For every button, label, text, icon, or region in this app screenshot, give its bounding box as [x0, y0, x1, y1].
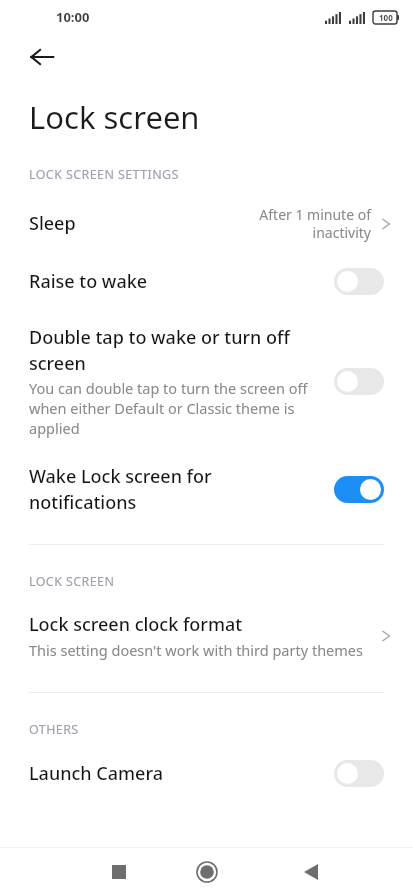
staticText: 10:00 — [56, 8, 90, 26]
button[interactable]: Lock screen clock format — [0, 612, 413, 660]
staticText: LOCK SCREEN SETTINGS — [29, 166, 179, 183]
button[interactable]: Back — [20, 35, 64, 79]
staticText: Wake Lock screen for notifications — [29, 464, 316, 514]
button[interactable]: Recents — [99, 852, 139, 892]
button[interactable]: Wake Lock screen for notifications — [0, 464, 413, 514]
staticText: Double tap to wake or turn off screen — [29, 325, 316, 375]
staticText: You can double tap to turn the screen of… — [29, 378, 316, 438]
button[interactable]: Home — [187, 852, 227, 892]
button[interactable]: Double tap to wake or turn off screen — [0, 325, 413, 438]
staticText: This setting doesn't work with third par… — [29, 640, 363, 660]
staticText: Lock screen — [29, 96, 200, 138]
button[interactable]: Off — [334, 760, 384, 787]
staticText: After 1 minute of inactivity — [251, 205, 371, 242]
staticText: Launch Camera — [29, 761, 163, 786]
button[interactable]: Launch Camera — [0, 760, 413, 787]
button[interactable]: Raise to wake — [0, 268, 413, 295]
staticText: LOCK SCREEN — [29, 573, 115, 590]
button[interactable]: Sleep — [0, 205, 413, 242]
staticText: Sleep — [29, 211, 76, 236]
button[interactable]: Off — [334, 368, 384, 395]
staticText: Lock screen clock format — [29, 612, 243, 637]
button[interactable]: On — [334, 476, 384, 503]
button[interactable]: Off — [334, 268, 384, 295]
staticText: Raise to wake — [29, 269, 148, 294]
button[interactable]: Back — [291, 852, 331, 892]
staticText: OTHERS — [29, 721, 79, 738]
staticText: 100 — [379, 12, 393, 23]
